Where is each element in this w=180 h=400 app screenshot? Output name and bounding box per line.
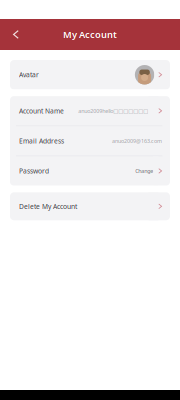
staticText: Avatar (19, 70, 39, 79)
staticText: My Account (63, 28, 117, 41)
button[interactable]: Avatar (10, 60, 170, 89)
staticText: anuo2009@163.com (112, 137, 162, 144)
staticText: Email Address (19, 136, 64, 145)
staticText: Account Name (19, 106, 64, 115)
button[interactable]: Email Address (10, 126, 170, 156)
staticText: anuo2009hello□□□□□□□ (78, 107, 148, 114)
button[interactable]: Password (10, 156, 170, 186)
staticText: Delete My Account (19, 202, 77, 211)
staticText: Change (135, 167, 153, 174)
button[interactable]: Back (0, 20, 28, 49)
staticText: Password (19, 166, 49, 175)
button[interactable]: Account Name (10, 96, 170, 126)
button[interactable]: Delete My Account (10, 192, 170, 220)
